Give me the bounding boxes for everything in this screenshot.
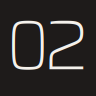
staticText: 0 bbox=[6, 0, 49, 96]
button[interactable]: 02 bbox=[0, 0, 96, 96]
staticText: 2 bbox=[43, 0, 89, 96]
